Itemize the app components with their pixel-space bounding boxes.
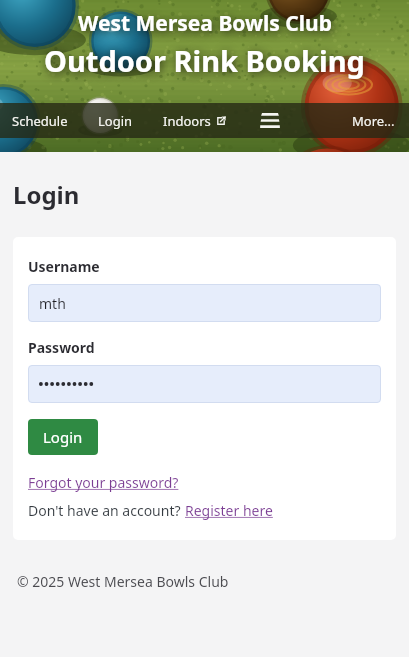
button[interactable]: Schedule bbox=[8, 108, 72, 134]
staticText: Indoors bbox=[163, 112, 211, 130]
staticText: Login bbox=[98, 112, 133, 130]
staticText: Login bbox=[43, 427, 83, 447]
button[interactable]: mth bbox=[28, 284, 381, 322]
staticText: Login bbox=[13, 178, 80, 211]
staticText: Password bbox=[28, 338, 95, 357]
staticText: Username bbox=[28, 257, 100, 276]
button[interactable]: Register here bbox=[185, 501, 273, 520]
button[interactable]: Login bbox=[28, 419, 98, 455]
staticText: mth bbox=[39, 294, 66, 313]
button[interactable] bbox=[28, 365, 381, 403]
staticText: Schedule bbox=[12, 112, 68, 130]
staticText: © 2025 West Mersea Bowls Club bbox=[17, 572, 229, 591]
staticText: West Mersea Bowls Club bbox=[78, 9, 332, 38]
staticText: More... bbox=[352, 112, 395, 130]
button[interactable]: Login bbox=[94, 108, 137, 134]
staticText: Don't have an account? bbox=[28, 501, 185, 520]
button[interactable]: Menu bbox=[256, 109, 284, 132]
button[interactable]: Forgot your password? bbox=[28, 473, 179, 492]
button[interactable]: Indoors bbox=[159, 108, 230, 134]
button[interactable]: More... bbox=[348, 108, 399, 134]
staticText: Outdoor Rink Booking bbox=[44, 41, 365, 80]
